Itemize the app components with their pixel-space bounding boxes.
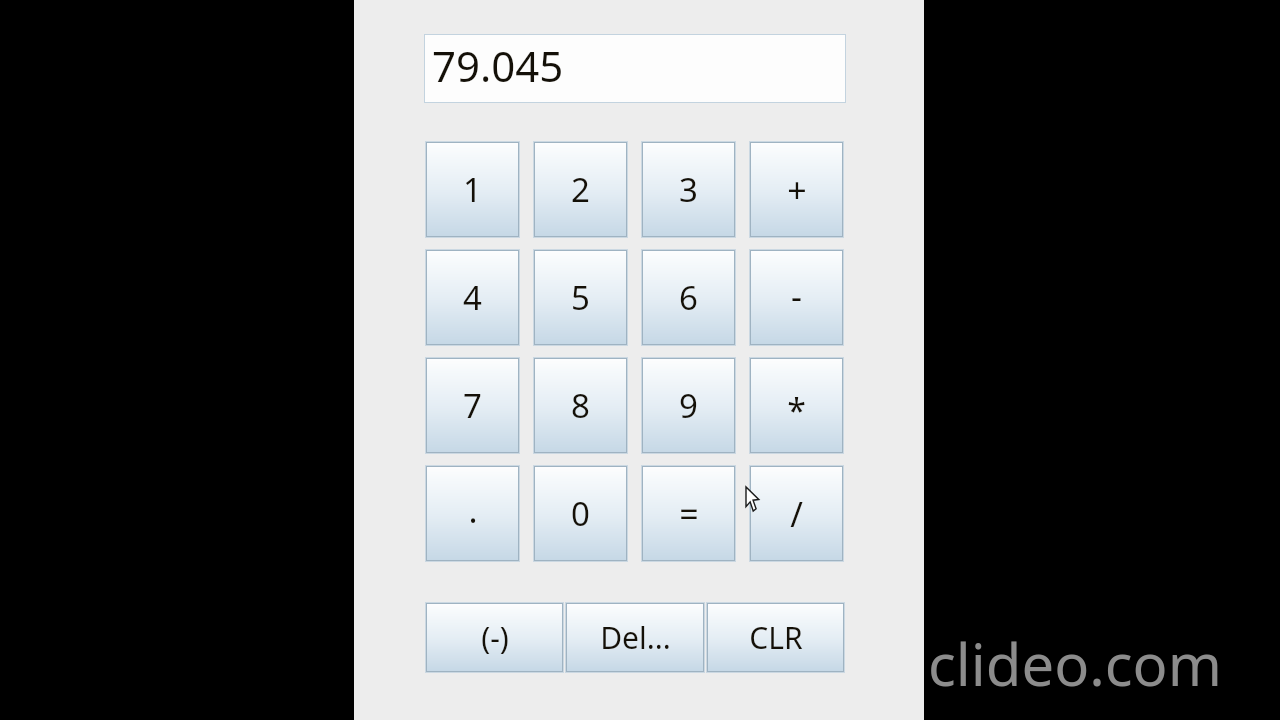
staticText: 3 bbox=[679, 167, 698, 212]
button[interactable]: + bbox=[751, 143, 842, 236]
staticText: 8 bbox=[571, 383, 590, 428]
staticText: 2 bbox=[571, 167, 590, 212]
button[interactable]: 5 bbox=[535, 251, 626, 344]
button[interactable]: Del... bbox=[567, 604, 703, 671]
button[interactable]: 2 bbox=[535, 143, 626, 236]
staticText: clideo.com bbox=[928, 624, 1222, 703]
button[interactable]: = bbox=[643, 467, 734, 560]
button[interactable]: - bbox=[751, 251, 842, 344]
staticText: 7 bbox=[463, 383, 482, 428]
staticText: + bbox=[787, 167, 807, 213]
button[interactable]: 9 bbox=[643, 359, 734, 452]
staticText: 0 bbox=[571, 491, 590, 536]
other: Pointer bbox=[746, 487, 762, 511]
staticText: = bbox=[679, 491, 699, 537]
button[interactable]: 8 bbox=[535, 359, 626, 452]
staticText: 9 bbox=[679, 383, 698, 428]
button[interactable]: 1 bbox=[427, 143, 518, 236]
staticText: 5 bbox=[571, 275, 590, 320]
staticText: 1 bbox=[463, 167, 482, 212]
button[interactable]: (-) bbox=[427, 604, 562, 671]
staticText: Del... bbox=[600, 617, 671, 658]
staticText: 4 bbox=[463, 275, 482, 320]
button[interactable]: 3 bbox=[643, 143, 734, 236]
staticText: 6 bbox=[679, 275, 698, 320]
staticText: (-) bbox=[481, 617, 509, 658]
button[interactable]: 7 bbox=[427, 359, 518, 452]
button[interactable]: 6 bbox=[643, 251, 734, 344]
staticText: 79.045 bbox=[432, 37, 564, 94]
button[interactable]: 0 bbox=[535, 467, 626, 560]
button[interactable]: / bbox=[751, 467, 842, 560]
staticText: CLR bbox=[749, 617, 803, 658]
button[interactable]: 79.045 bbox=[424, 34, 846, 103]
button[interactable]: CLR bbox=[708, 604, 843, 671]
staticText: . bbox=[468, 487, 478, 533]
button[interactable]: 4 bbox=[427, 251, 518, 344]
button[interactable]: * bbox=[751, 359, 842, 452]
button[interactable]: . bbox=[427, 467, 518, 560]
staticText: / bbox=[790, 491, 803, 537]
staticText: - bbox=[791, 273, 802, 319]
staticText: * bbox=[787, 387, 806, 433]
